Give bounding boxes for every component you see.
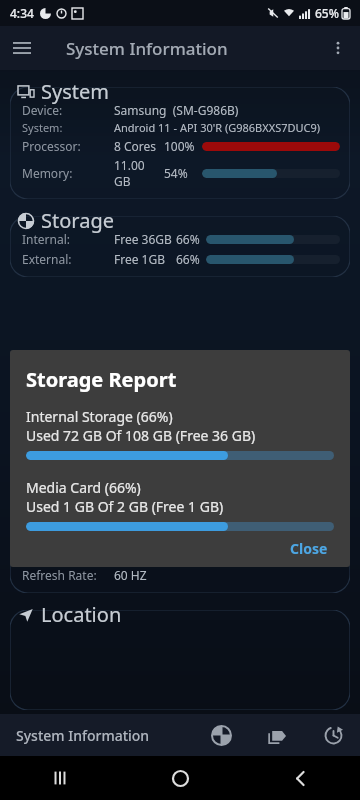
staticText: Media Card (66%)	[26, 478, 141, 497]
staticText: Free 1GB	[114, 251, 176, 267]
staticText: System Information	[66, 37, 228, 60]
staticText: Free 36GB	[114, 231, 176, 247]
button[interactable]: Back	[276, 756, 324, 800]
staticText: System	[41, 78, 109, 105]
staticText: Display	[41, 507, 110, 534]
staticText: Android 11 - API 30'R (G986BXXS7DUC9)	[114, 120, 321, 135]
staticText: Memory:	[22, 165, 114, 181]
staticText: Processor:	[22, 138, 114, 154]
staticText: 100%	[164, 138, 202, 154]
button[interactable]: Recents	[36, 756, 84, 800]
button[interactable]: Home	[156, 756, 204, 800]
staticText: Used 72 GB Of 108 GB (Free 36 GB)	[26, 426, 256, 445]
staticText: Location	[41, 601, 122, 628]
staticText: 60 HZ	[114, 567, 147, 583]
staticText: System Information	[16, 726, 150, 745]
staticText: 54%	[164, 165, 202, 181]
staticText: Internal Storage (66%)	[26, 407, 173, 426]
button[interactable]: Refresh	[312, 714, 354, 756]
button[interactable]: Storage report	[200, 714, 242, 756]
button[interactable]: Labels	[256, 714, 298, 756]
staticText: External:	[22, 251, 114, 267]
staticText: Close	[290, 539, 328, 558]
staticText: 11.00 GB	[114, 157, 164, 189]
staticText: 65%	[315, 5, 339, 21]
staticText: Internal:	[22, 231, 114, 247]
staticText: 66%	[176, 251, 206, 267]
button[interactable]: More options	[316, 26, 360, 70]
staticText: 66%	[176, 231, 206, 247]
button[interactable]: Close	[280, 531, 338, 566]
staticText: Storage	[41, 207, 114, 234]
staticText: 8 Cores	[114, 138, 164, 154]
staticText: Device:	[22, 102, 114, 118]
staticText: Used 1 GB Of 2 GB (Free 1 GB)	[26, 497, 224, 516]
staticText: Storage Report	[26, 366, 177, 393]
button[interactable]: Menu	[0, 26, 44, 70]
staticText: System:	[22, 120, 114, 135]
staticText: Samsung (SM-G986B)	[114, 102, 239, 118]
staticText: Refresh Rate:	[22, 567, 114, 583]
staticText: 4:34	[10, 5, 34, 21]
